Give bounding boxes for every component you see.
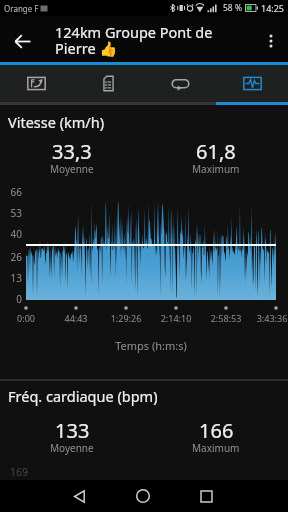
staticText: 66 [0,185,22,199]
staticText: 1:29:26 [101,312,151,324]
staticText: 3:43:36 [247,312,288,324]
staticText: 26 [0,250,22,264]
button[interactable]: More options [260,16,288,62]
staticText: 169 [10,465,29,479]
staticText: 44:43 [51,312,101,324]
button[interactable]: Home [120,480,165,512]
staticText: 61,8 [196,138,236,165]
staticText: Temps (h:m:s) [51,338,251,353]
staticText: Moyenne [50,162,94,176]
button[interactable]: Back [57,480,101,512]
button[interactable]: Graphs [216,65,288,102]
staticText: 0:00 [1,312,51,324]
staticText: 2:14:10 [151,312,201,324]
staticText: 0 [0,292,22,306]
staticText: 133 [55,417,90,444]
staticText: 166 [199,417,234,444]
staticText: Vitesse (km/h) [8,112,105,132]
button[interactable]: Recent apps [184,480,228,512]
staticText: Fréq. cardiaque (bpm) [8,386,158,406]
staticText: Maximum [192,162,240,176]
staticText: Maximum [192,441,240,455]
staticText: 2:58:53 [201,312,251,324]
button[interactable]: Navigate up [0,16,44,62]
staticText: Moyenne [50,441,94,455]
button[interactable]: Details [72,65,144,102]
staticText: 124km Groupe Pont de Pierre 👍 [55,22,245,59]
staticText: 33,3 [52,138,92,165]
staticText: Orange F [4,3,39,14]
button[interactable]: Map [0,65,72,102]
staticText: 53 [0,206,22,220]
staticText: 58 % [223,2,242,14]
staticText: 13 [0,271,22,285]
button[interactable]: Laps [144,65,216,102]
staticText: 40 [0,227,22,241]
staticText: 14:25 [261,2,285,14]
